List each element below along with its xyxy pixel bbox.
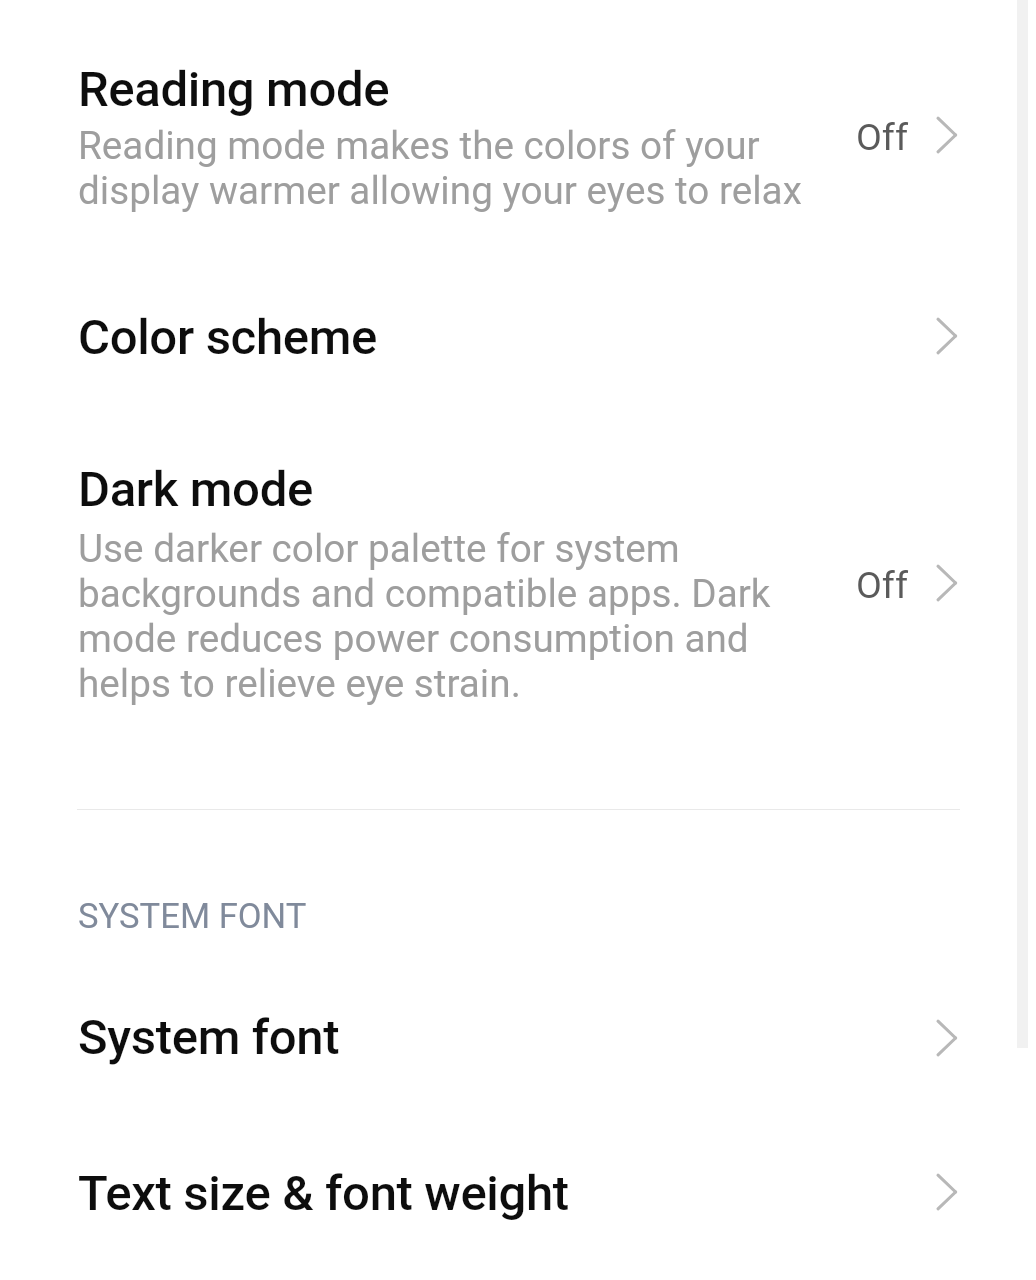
staticText: Use darker color palette for system back… bbox=[78, 526, 771, 706]
button[interactable]: Reading mode bbox=[928, 105, 968, 165]
button[interactable]: Dark mode bbox=[0, 440, 1036, 715]
button[interactable]: System font bbox=[928, 1008, 968, 1068]
staticText: Dark mode bbox=[78, 461, 313, 518]
staticText: Text size & font weight bbox=[78, 1165, 569, 1222]
button[interactable]: Reading mode bbox=[0, 34, 1036, 230]
button[interactable]: System font bbox=[0, 990, 1036, 1080]
staticText: Color scheme bbox=[78, 309, 377, 366]
button[interactable]: Text size & font weight bbox=[0, 1145, 1036, 1235]
staticText: SYSTEM FONT bbox=[78, 896, 307, 937]
staticText: Reading mode makes the colors of your di… bbox=[78, 123, 802, 213]
button[interactable]: Color scheme bbox=[928, 306, 968, 366]
staticText: Off bbox=[856, 115, 909, 159]
button[interactable]: Color scheme bbox=[0, 290, 1036, 380]
staticText: Reading mode bbox=[78, 61, 390, 118]
staticText: Off bbox=[856, 563, 909, 607]
button[interactable]: Dark mode bbox=[928, 553, 968, 613]
staticText: System font bbox=[78, 1009, 340, 1066]
button[interactable]: Text size & font weight bbox=[928, 1162, 968, 1222]
